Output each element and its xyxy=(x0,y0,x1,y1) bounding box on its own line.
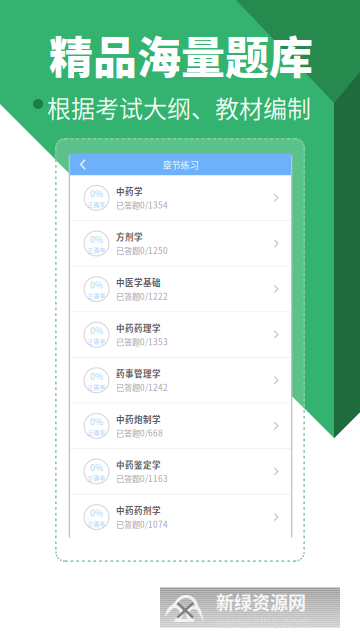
staticText: 正确率 xyxy=(87,383,105,391)
button[interactable]: Back xyxy=(70,154,96,176)
staticText: 中医学基础 xyxy=(116,276,161,289)
button[interactable]: 0% xyxy=(70,358,291,403)
staticText: 方剂学 xyxy=(116,231,143,243)
button[interactable]: 0% xyxy=(70,495,291,539)
staticText: 已答题0/1222 xyxy=(116,290,168,302)
staticText: 已答题0/1074 xyxy=(116,518,168,530)
staticText: 中药药剂学 xyxy=(116,504,161,517)
staticText: 章节练习 xyxy=(162,158,198,171)
staticText: 药事管理学 xyxy=(116,367,161,380)
staticText: 0% xyxy=(90,233,103,245)
staticText: 已答题0/1250 xyxy=(116,244,168,256)
button[interactable]: 0% xyxy=(70,176,291,220)
staticText: 正确率 xyxy=(87,520,105,528)
staticText: 0% xyxy=(90,415,103,428)
staticText: 已答题0/668 xyxy=(116,427,163,439)
staticText: 已答题0/1242 xyxy=(116,381,168,393)
staticText: 中药炮制学 xyxy=(116,413,161,425)
staticText: 正确率 xyxy=(87,474,105,482)
staticText: 0% xyxy=(90,187,103,200)
staticText: 正确率 xyxy=(87,200,105,209)
staticText: 中药鉴定学 xyxy=(116,459,161,471)
staticText: 根据考试大纲、教材编制 xyxy=(47,90,311,125)
staticText: 0% xyxy=(90,278,103,291)
button[interactable]: 0% xyxy=(70,449,291,494)
button[interactable]: 0% xyxy=(70,267,291,311)
staticText: 已答题0/1354 xyxy=(116,199,168,211)
staticText: 中药学 xyxy=(116,185,143,197)
staticText: 正确率 xyxy=(87,292,105,300)
staticText: 0% xyxy=(90,461,103,473)
staticText: 0% xyxy=(90,369,103,382)
staticText: 精品海量题库 xyxy=(49,23,313,87)
staticText: 中药药理学 xyxy=(116,322,161,334)
staticText: 正确率 xyxy=(87,337,105,345)
button[interactable]: 0% xyxy=(70,221,291,266)
button[interactable]: 0% xyxy=(70,312,291,357)
staticText: www.xlhs.com xyxy=(216,615,310,631)
staticText: 0% xyxy=(90,506,103,519)
staticText: 已答题0/1163 xyxy=(116,472,168,484)
staticText: 正确率 xyxy=(87,428,105,437)
staticText: 新绿资源网 xyxy=(216,588,306,615)
button[interactable]: 0% xyxy=(70,404,291,448)
staticText: 已答题0/1353 xyxy=(116,336,168,348)
staticText: 0% xyxy=(90,324,103,337)
staticText: 正确率 xyxy=(87,246,105,254)
